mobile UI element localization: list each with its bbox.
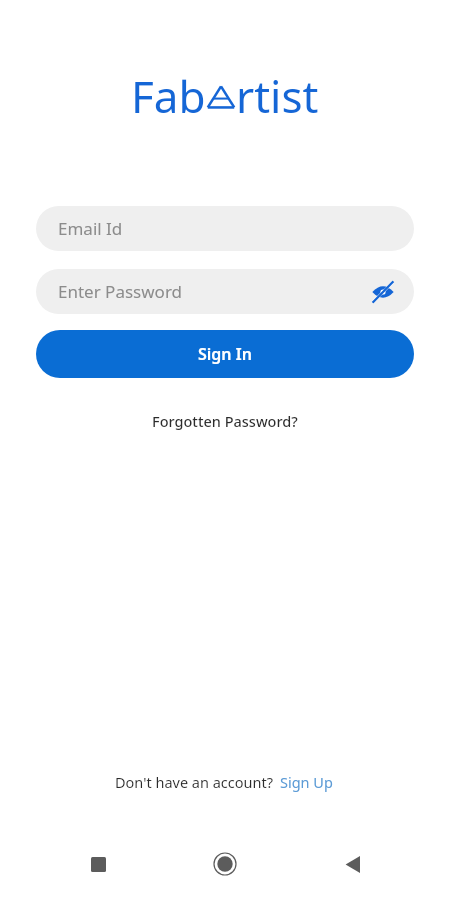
button[interactable]: Sign In [36,330,414,378]
staticText: Forgotten Password? [152,411,298,431]
staticText: Don't have an account? [115,772,273,792]
button[interactable]: Forgotten Password? [144,407,306,435]
button[interactable]: Home [203,842,247,886]
staticText: Sign In [198,343,252,365]
button[interactable]: Enter Password [36,269,414,314]
button[interactable]: Back [330,842,374,886]
button[interactable]: Show password [368,277,398,307]
button[interactable]: Recent apps [76,842,120,886]
button[interactable]: Sign Up [278,770,335,794]
staticText: rtist [236,66,319,126]
staticText: Sign Up [280,772,333,792]
staticText: Enter Password [58,280,368,303]
staticText: Email Id [58,217,398,240]
button[interactable]: Email Id [36,206,414,251]
staticText: Fab [131,66,206,126]
